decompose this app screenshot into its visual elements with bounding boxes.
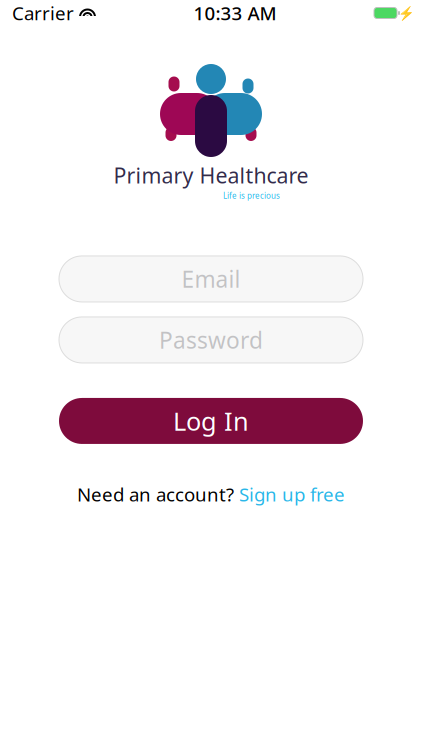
staticText: ⚡ (397, 5, 414, 21)
staticText: Life is precious (223, 190, 280, 201)
staticText: Need an account? (77, 482, 234, 507)
staticText: Carrier (12, 1, 74, 25)
button[interactable]: Sign up free (239, 482, 345, 507)
button[interactable]: Password (59, 317, 363, 363)
button[interactable]: Email (59, 256, 363, 302)
staticText: Primary Healthcare (113, 161, 308, 189)
staticText: Email (181, 264, 240, 294)
staticText: Password (159, 325, 263, 355)
staticText: Log In (173, 404, 249, 438)
staticText: Sign up free (239, 482, 345, 507)
button[interactable]: Log In (59, 398, 363, 444)
staticText: 10:33 AM (193, 1, 276, 25)
